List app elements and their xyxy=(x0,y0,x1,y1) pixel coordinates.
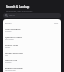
staticText: Search & Lookup xyxy=(6,5,30,9)
staticText: Contact xyxy=(5,61,12,63)
staticText: Search xyxy=(9,14,15,17)
staticText: File xyxy=(5,54,8,56)
staticText: Find people, files and settings xyxy=(6,10,33,13)
button[interactable]: Quarterly report xyxy=(3,36,61,43)
staticText: Recent xyxy=(5,22,12,25)
staticText: Anna Whitfield xyxy=(5,28,21,31)
button[interactable]: Budget overview xyxy=(3,67,61,72)
staticText: Quarterly report xyxy=(5,36,23,39)
button[interactable]: Anna Whitfield xyxy=(3,28,61,35)
staticText: design-notes.pdf xyxy=(5,52,23,55)
button[interactable]: Marcus Lee xyxy=(3,59,61,66)
staticText: Folder xyxy=(5,46,11,48)
staticText: Project Atlas xyxy=(5,44,19,47)
staticText: Budget overview xyxy=(5,67,23,70)
button[interactable]: design-notes.pdf xyxy=(3,52,61,59)
staticText: Document xyxy=(5,38,14,40)
staticText: Marcus Lee xyxy=(5,59,17,62)
button[interactable]: Search xyxy=(3,13,61,18)
staticText: Contact xyxy=(5,30,12,32)
button[interactable]: Clear xyxy=(54,22,59,24)
button[interactable]: Project Atlas xyxy=(3,44,61,51)
staticText: Spreadsheet xyxy=(5,69,16,71)
